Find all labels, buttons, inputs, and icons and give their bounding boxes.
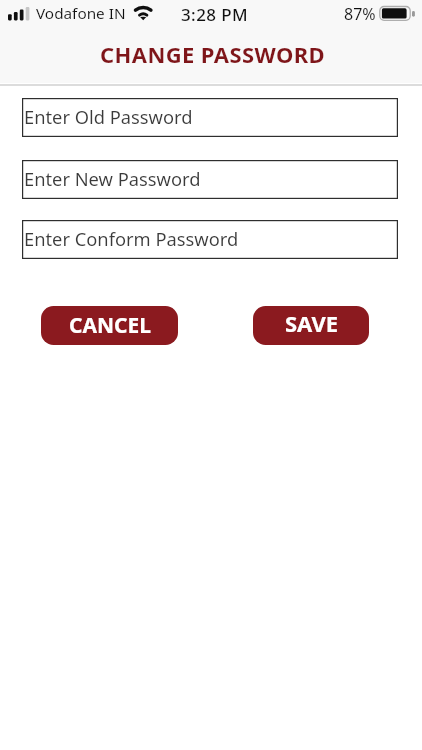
other: Cellular signal [8, 6, 32, 22]
button[interactable]: Enter Conform Password [22, 220, 398, 259]
other: Wi-Fi [130, 4, 157, 22]
staticText: Enter Conform Password [24, 226, 239, 251]
staticText: CHANGE PASSWORD [100, 39, 326, 67]
button[interactable]: Enter New Password [22, 160, 398, 199]
staticText: SAVE [285, 308, 339, 338]
button[interactable]: CANCEL [41, 306, 178, 345]
other: Battery 87 percent [378, 5, 418, 23]
staticText: Enter Old Password [24, 104, 193, 129]
button[interactable]: SAVE [253, 306, 369, 345]
staticText: Vodafone IN [36, 3, 126, 24]
button[interactable]: Enter Old Password [22, 98, 398, 137]
staticText: 87% [344, 3, 376, 25]
staticText: CANCEL [69, 311, 152, 340]
staticText: Enter New Password [24, 166, 201, 191]
staticText: 3:28 PM [181, 3, 248, 26]
